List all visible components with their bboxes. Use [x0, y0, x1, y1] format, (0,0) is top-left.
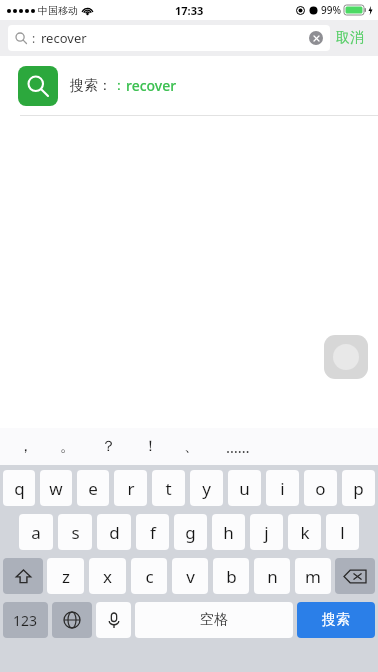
button[interactable]: p	[342, 470, 375, 506]
button[interactable]: m	[295, 558, 331, 594]
staticText: o	[315, 477, 326, 500]
staticText: k	[300, 521, 310, 544]
button[interactable]: ……	[218, 433, 258, 461]
button[interactable]: f	[136, 514, 169, 550]
staticText: ？	[101, 437, 116, 456]
button[interactable]: 取消	[330, 25, 370, 51]
button[interactable]: e	[77, 470, 109, 506]
staticText: recover	[41, 29, 87, 47]
staticText: l	[340, 521, 345, 544]
button[interactable]: 空格	[135, 602, 293, 638]
button[interactable]: v	[172, 558, 208, 594]
staticText: 取消	[336, 29, 364, 47]
button[interactable]: 、	[176, 433, 207, 460]
staticText: 中国移动	[38, 4, 78, 17]
button[interactable]: :	[8, 25, 330, 51]
button[interactable]: x	[89, 558, 126, 594]
staticText: 99%	[321, 3, 341, 17]
button[interactable]: Shift	[3, 558, 43, 594]
button[interactable]: h	[212, 514, 245, 550]
staticText: z	[62, 565, 70, 588]
button[interactable]: ，	[10, 433, 41, 460]
button[interactable]: j	[250, 514, 283, 550]
staticText: y	[202, 477, 211, 500]
staticText: 搜索：	[70, 77, 112, 95]
staticText: 空格	[200, 611, 228, 629]
button[interactable]: c	[131, 558, 167, 594]
staticText: u	[239, 477, 250, 500]
button[interactable]: 。	[52, 433, 83, 460]
button[interactable]: 搜索	[297, 602, 375, 638]
staticText: d	[109, 521, 120, 544]
staticText: x	[103, 565, 112, 588]
staticText: h	[223, 521, 234, 544]
button[interactable]: r	[114, 470, 147, 506]
button[interactable]: l	[326, 514, 359, 550]
staticText: v	[186, 565, 195, 588]
button[interactable]: Backspace	[335, 558, 375, 594]
staticText: q	[14, 477, 25, 500]
staticText: 。	[60, 437, 75, 456]
button[interactable]: w	[40, 470, 72, 506]
staticText: j	[264, 521, 269, 544]
staticText: ！	[143, 437, 158, 456]
staticText: p	[353, 477, 364, 500]
staticText: s	[71, 521, 80, 544]
staticText: ……	[226, 437, 250, 457]
button[interactable]: ！	[135, 433, 166, 460]
button[interactable]: d	[97, 514, 131, 550]
button[interactable]: ？	[93, 433, 124, 460]
staticText: m	[305, 565, 321, 588]
button[interactable]: a	[19, 514, 53, 550]
button[interactable]: s	[58, 514, 92, 550]
staticText: ：	[112, 77, 126, 95]
button[interactable]: y	[190, 470, 223, 506]
button[interactable]: t	[152, 470, 185, 506]
staticText: 、	[184, 437, 199, 456]
staticText: n	[267, 565, 278, 588]
staticText: w	[49, 477, 63, 500]
button[interactable]: o	[304, 470, 337, 506]
button[interactable]: i	[266, 470, 299, 506]
staticText: recover	[126, 76, 177, 95]
staticText: 17:33	[175, 3, 204, 18]
staticText: g	[185, 521, 196, 544]
button[interactable]: q	[3, 470, 35, 506]
staticText: i	[280, 477, 285, 500]
staticText: f	[150, 521, 156, 544]
button[interactable]: Voice input	[96, 602, 131, 638]
staticText: c	[145, 565, 154, 588]
button[interactable]: z	[47, 558, 84, 594]
button[interactable]: b	[213, 558, 249, 594]
staticText: a	[31, 521, 41, 544]
staticText: t	[165, 477, 172, 500]
staticText: r	[127, 477, 135, 500]
staticText: 123	[13, 611, 38, 630]
button[interactable]: k	[288, 514, 321, 550]
staticText: 搜索	[322, 611, 350, 629]
button[interactable]: Clear	[309, 31, 323, 45]
staticText: e	[88, 477, 98, 500]
staticText: b	[226, 565, 237, 588]
button[interactable]: 搜索：	[0, 56, 378, 115]
button[interactable]: n	[254, 558, 290, 594]
button[interactable]: g	[174, 514, 207, 550]
staticText: ，	[18, 437, 33, 456]
button[interactable]: u	[228, 470, 261, 506]
button[interactable]: Switch language	[52, 602, 92, 638]
button[interactable]: 123	[3, 602, 48, 638]
staticText: :	[32, 30, 36, 46]
